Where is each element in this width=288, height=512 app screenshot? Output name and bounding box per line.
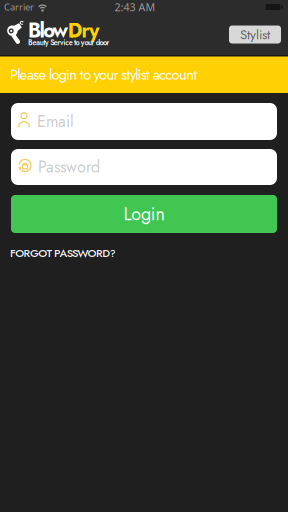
staticText: Please login to your stylist account: [10, 64, 197, 85]
button[interactable]: Stylist: [229, 25, 281, 43]
staticText: Blow: [28, 16, 68, 45]
button[interactable]: Login: [11, 195, 277, 233]
staticText: Login: [123, 201, 165, 227]
staticText: Dry: [68, 16, 99, 45]
staticText: Stylist: [240, 25, 270, 44]
staticText: Email: [37, 110, 74, 133]
staticText: Password: [38, 155, 100, 178]
button[interactable]: Password: [11, 149, 277, 185]
staticText: Carrier: [4, 1, 34, 13]
staticText: 2:43 AM: [114, 0, 155, 14]
button[interactable]: FORGOT PASSWORD?: [10, 245, 116, 261]
staticText: Beauty Service to your door: [28, 37, 110, 48]
button[interactable]: Email: [11, 103, 277, 140]
staticText: FORGOT PASSWORD?: [10, 245, 116, 261]
